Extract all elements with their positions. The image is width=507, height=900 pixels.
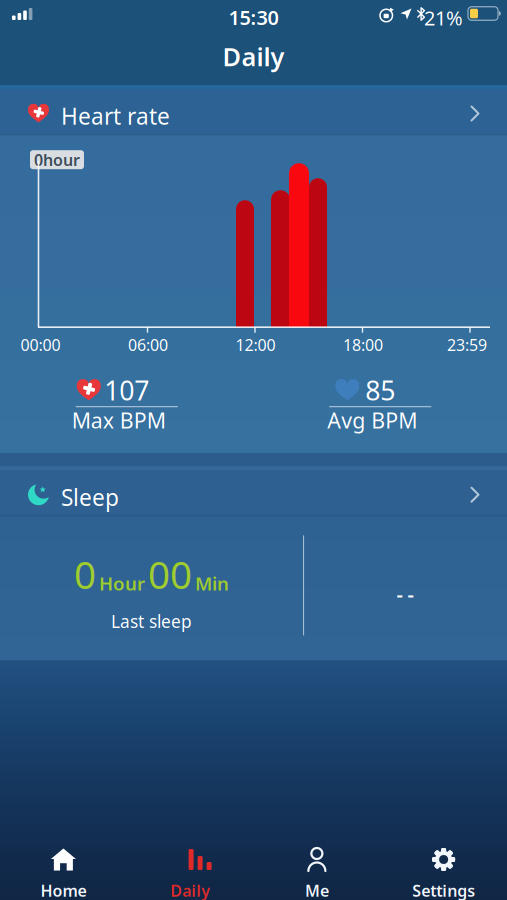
button[interactable]: Heart rate — [0, 85, 507, 134]
staticText: Home — [40, 880, 86, 900]
button[interactable]: Daily — [127, 847, 254, 900]
staticText: 0 — [74, 548, 96, 600]
staticText: 107 — [104, 372, 149, 408]
staticText: 0hour — [34, 149, 80, 170]
staticText: Sleep — [61, 482, 119, 512]
staticText: 23:59 — [447, 334, 487, 355]
staticText: Settings — [412, 880, 475, 900]
staticText: Last sleep — [111, 610, 192, 633]
staticText: Hour — [99, 571, 145, 596]
staticText: 12:00 — [235, 334, 275, 355]
staticText: Me — [305, 880, 329, 900]
staticText: 21% — [424, 4, 463, 31]
staticText: 00 — [148, 548, 192, 600]
staticText: 85 — [365, 372, 395, 408]
staticText: Daily — [222, 40, 284, 73]
staticText: Heart rate — [61, 101, 170, 131]
staticText: 18:00 — [343, 334, 383, 355]
staticText: 06:00 — [128, 334, 168, 355]
button[interactable]: Me — [253, 847, 380, 900]
staticText: Min — [195, 571, 229, 596]
staticText: Daily — [170, 880, 210, 900]
staticText: 00:00 — [20, 334, 60, 355]
button[interactable]: Sleep — [0, 466, 507, 515]
staticText: 15:30 — [228, 4, 278, 31]
button[interactable]: Settings — [380, 847, 507, 900]
staticText: - - — [396, 580, 413, 607]
staticText: Avg BPM — [327, 406, 417, 434]
button[interactable]: Home — [0, 847, 127, 900]
staticText: Max BPM — [72, 406, 166, 434]
